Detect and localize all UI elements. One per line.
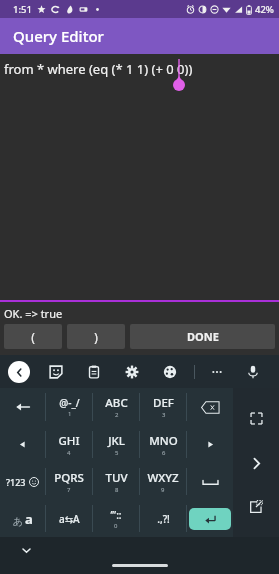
- button[interactable]: Open in new window: [243, 494, 269, 520]
- button[interactable]: TUV: [93, 463, 139, 500]
- button[interactable]: ): [67, 324, 125, 349]
- button[interactable]: Back: [8, 361, 30, 383]
- button[interactable]: Next page: [241, 448, 271, 478]
- button[interactable]: Delete: [187, 388, 233, 426]
- staticText: WXYZ: [147, 470, 179, 486]
- staticText: 42%: [255, 3, 274, 16]
- staticText: 9: [161, 486, 165, 494]
- button[interactable]: Stickers: [46, 362, 66, 382]
- staticText: MNO: [149, 433, 178, 449]
- staticText: ’”::: [110, 508, 122, 522]
- staticText: 3: [162, 411, 166, 419]
- button[interactable]: ’”::: [93, 500, 139, 537]
- staticText: OK. => true: [4, 306, 63, 321]
- button[interactable]: Hide keyboard: [16, 540, 36, 560]
- staticText: 6: [162, 449, 166, 457]
- staticText: JKL: [108, 433, 125, 449]
- staticText: GHI: [58, 433, 80, 449]
- button[interactable]: Previous: [0, 426, 45, 463]
- button[interactable]: More options: [207, 362, 227, 382]
- button[interactable]: Undo: [0, 388, 45, 426]
- button[interactable]: ABC: [93, 388, 139, 426]
- button[interactable]: PQRS: [46, 463, 92, 500]
- staticText: PQRS: [54, 470, 84, 486]
- button[interactable]: GHI: [46, 426, 92, 463]
- button[interactable]: Clipboard: [84, 362, 104, 382]
- staticText: 4: [67, 449, 71, 457]
- button[interactable]: Input mode: [0, 500, 45, 537]
- staticText: DONE: [187, 329, 219, 344]
- staticText: DEF: [153, 395, 174, 411]
- staticText: .,?!: [157, 512, 170, 526]
- staticText: 8: [115, 486, 119, 494]
- button[interactable]: @-_/: [46, 388, 92, 426]
- button[interactable]: Space: [187, 463, 233, 500]
- button[interactable]: Settings: [122, 362, 142, 382]
- button[interactable]: DEF: [140, 388, 186, 426]
- button[interactable]: Query Editor: [0, 18, 279, 54]
- button[interactable]: JKL: [93, 426, 139, 463]
- button[interactable]: Resize keyboard: [243, 405, 269, 431]
- staticText: a: [25, 510, 33, 528]
- staticText: 1:51: [13, 3, 32, 16]
- button[interactable]: (: [4, 324, 62, 349]
- button[interactable]: Theme: [160, 362, 180, 382]
- button[interactable]: from * where (eq (* 1 1) (+ 0 0)): [0, 54, 279, 300]
- staticText: ): [94, 329, 98, 345]
- staticText: Query Editor: [13, 26, 104, 46]
- button[interactable]: DONE: [130, 324, 275, 349]
- staticText: 2: [115, 411, 119, 419]
- staticText: @-_/: [59, 396, 80, 410]
- staticText: 7: [67, 486, 71, 494]
- staticText: 1: [68, 410, 72, 418]
- staticText: ?123: [6, 476, 26, 488]
- staticText: a⇆A: [59, 512, 80, 526]
- button[interactable]: WXYZ: [140, 463, 186, 500]
- button[interactable]: .,?!: [140, 500, 186, 537]
- button[interactable]: Symbols: [0, 463, 45, 500]
- button[interactable]: Next: [187, 426, 233, 463]
- button[interactable]: Change case: [46, 500, 92, 537]
- staticText: from * where (eq (* 1 1) (+ 0 0)): [4, 60, 193, 78]
- button[interactable]: MNO: [140, 426, 186, 463]
- staticText: あ: [13, 515, 24, 528]
- staticText: TUV: [105, 470, 128, 486]
- staticText: 5: [115, 449, 119, 457]
- staticText: (: [31, 329, 35, 345]
- staticText: ABC: [105, 395, 128, 411]
- button[interactable]: Voice input: [243, 362, 263, 382]
- button[interactable]: Enter: [187, 500, 233, 537]
- staticText: 0: [114, 522, 118, 530]
